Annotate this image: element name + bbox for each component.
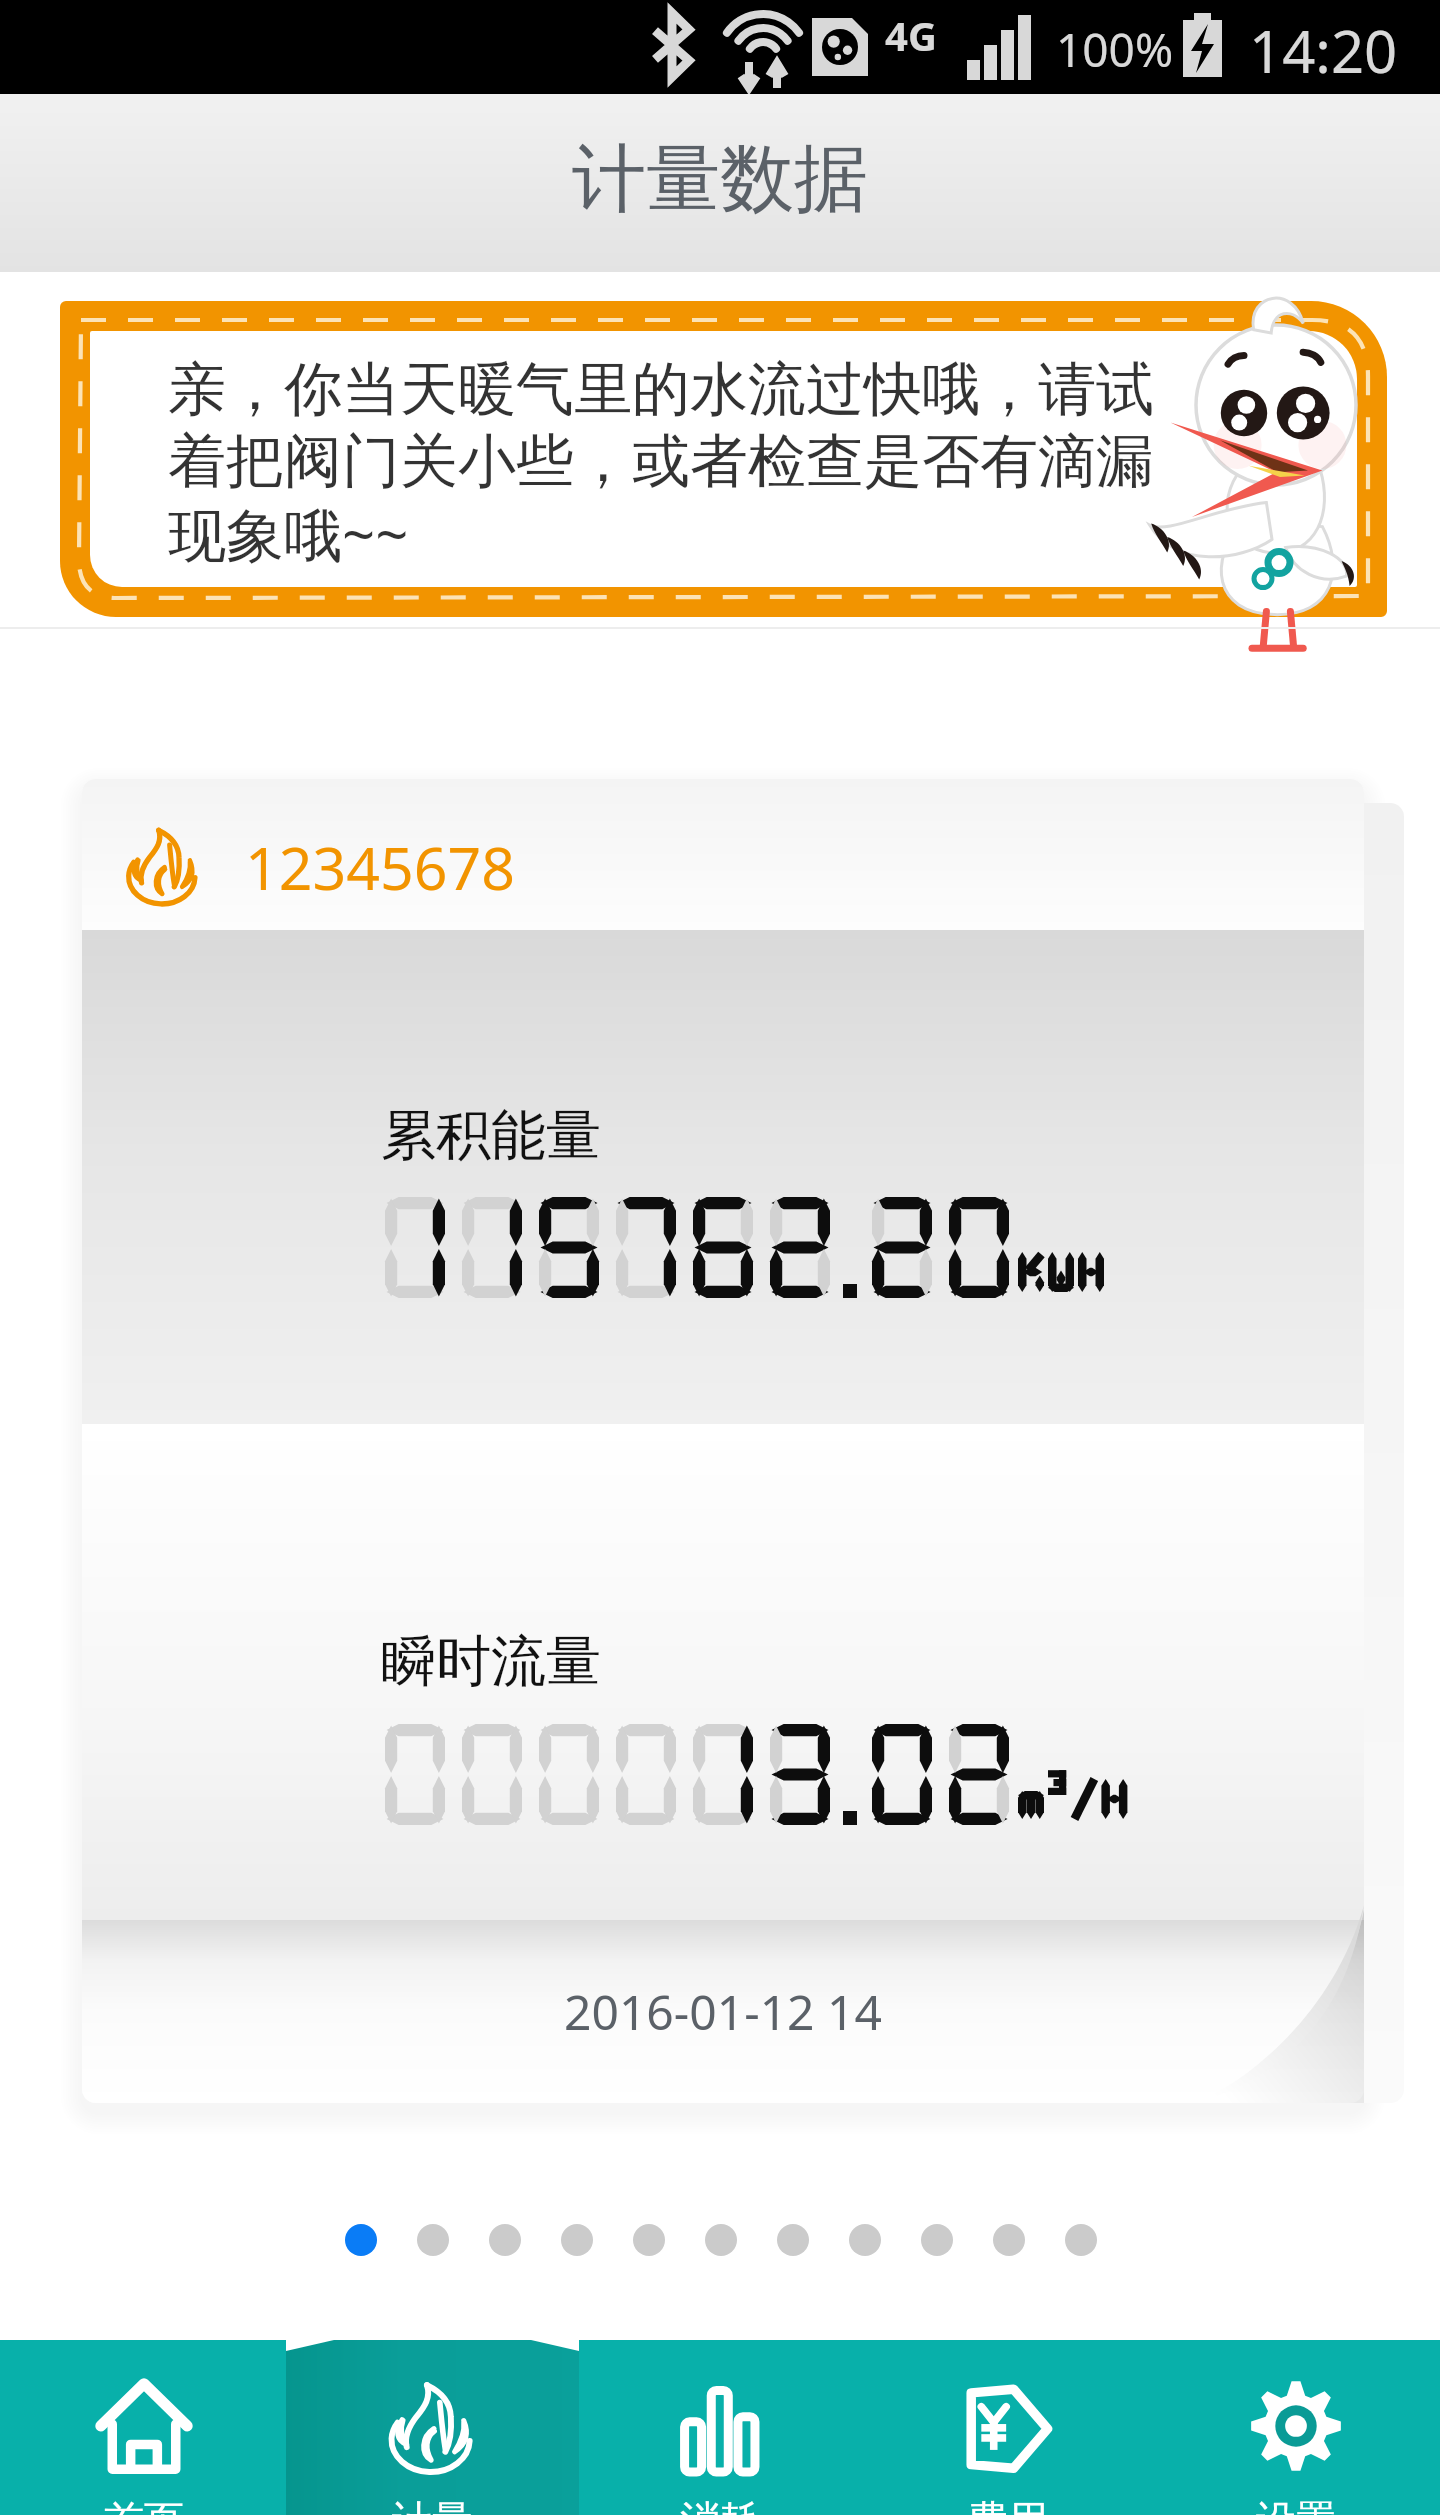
staticText: 亲，你当天暖气里的水流过快哦，请试着把阀门关小些，或者检查是否有滴漏现象哦~~ bbox=[168, 353, 1168, 573]
staticText: 14:20 bbox=[1249, 11, 1398, 90]
staticText: 4G bbox=[885, 8, 937, 62]
button[interactable]: Page 4 bbox=[561, 2224, 593, 2256]
button[interactable]: Page 5 bbox=[633, 2224, 665, 2256]
button[interactable]: Page 10 bbox=[993, 2224, 1025, 2256]
staticText: 瞬时流量 bbox=[381, 1627, 601, 1696]
button[interactable]: Page 3 bbox=[489, 2224, 521, 2256]
button[interactable]: Page 2 bbox=[417, 2224, 449, 2256]
button[interactable]: Page 9 bbox=[921, 2224, 953, 2256]
staticText: 计量数据 bbox=[572, 133, 868, 226]
staticText: 费用 bbox=[968, 2495, 1048, 2515]
button[interactable]: 费用 bbox=[864, 2340, 1152, 2515]
staticText: 计量 bbox=[392, 2495, 472, 2515]
button[interactable]: 计量 bbox=[288, 2340, 576, 2515]
button[interactable]: 设置 bbox=[1152, 2340, 1440, 2515]
button[interactable]: Page 11 bbox=[1065, 2224, 1097, 2256]
staticText: 100% bbox=[1056, 18, 1174, 81]
staticText: 消耗 bbox=[680, 2495, 760, 2515]
button[interactable]: 消耗 bbox=[576, 2340, 864, 2515]
staticText: 设置 bbox=[1256, 2495, 1336, 2515]
button[interactable]: 12345678 bbox=[82, 779, 1364, 2103]
staticText: 12345678 bbox=[245, 827, 515, 907]
staticText: 首页 bbox=[104, 2495, 184, 2515]
staticText: 累积能量 bbox=[381, 1101, 601, 1170]
button[interactable]: Page 7 bbox=[777, 2224, 809, 2256]
button[interactable]: Page 8 bbox=[849, 2224, 881, 2256]
button[interactable]: Page 6 bbox=[705, 2224, 737, 2256]
button[interactable]: Page 1 bbox=[345, 2224, 377, 2256]
button[interactable]: 首页 bbox=[0, 2340, 288, 2515]
staticText: 2016-01-12 14 bbox=[564, 1979, 882, 2044]
